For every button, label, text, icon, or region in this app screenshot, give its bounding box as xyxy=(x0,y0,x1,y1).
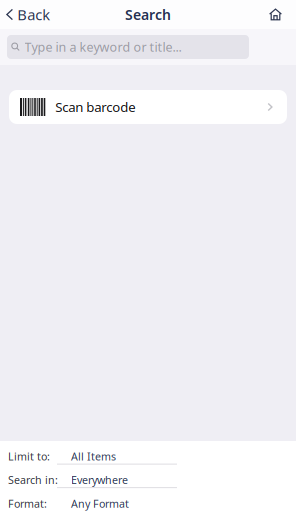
staticText: Back xyxy=(17,4,50,24)
button[interactable]: Type in a keyword or title... xyxy=(7,35,249,59)
button[interactable]: Limit to: xyxy=(0,441,296,465)
button[interactable]: Home xyxy=(261,0,296,28)
button[interactable]: Back xyxy=(0,0,56,28)
staticText: Limit to: xyxy=(8,449,50,464)
button[interactable]: Scan barcode xyxy=(0,90,296,124)
staticText: Type in a keyword or title... xyxy=(24,38,181,56)
button[interactable]: Search in: xyxy=(0,465,296,488)
button[interactable]: Format: xyxy=(0,488,296,512)
staticText: Any Format xyxy=(71,496,129,511)
staticText: All Items xyxy=(71,449,116,464)
staticText: Search in: xyxy=(8,473,58,487)
staticText: Everywhere xyxy=(71,473,128,487)
staticText: Search xyxy=(125,5,171,24)
staticText: Scan barcode xyxy=(55,98,135,116)
staticText: Format: xyxy=(8,496,47,511)
